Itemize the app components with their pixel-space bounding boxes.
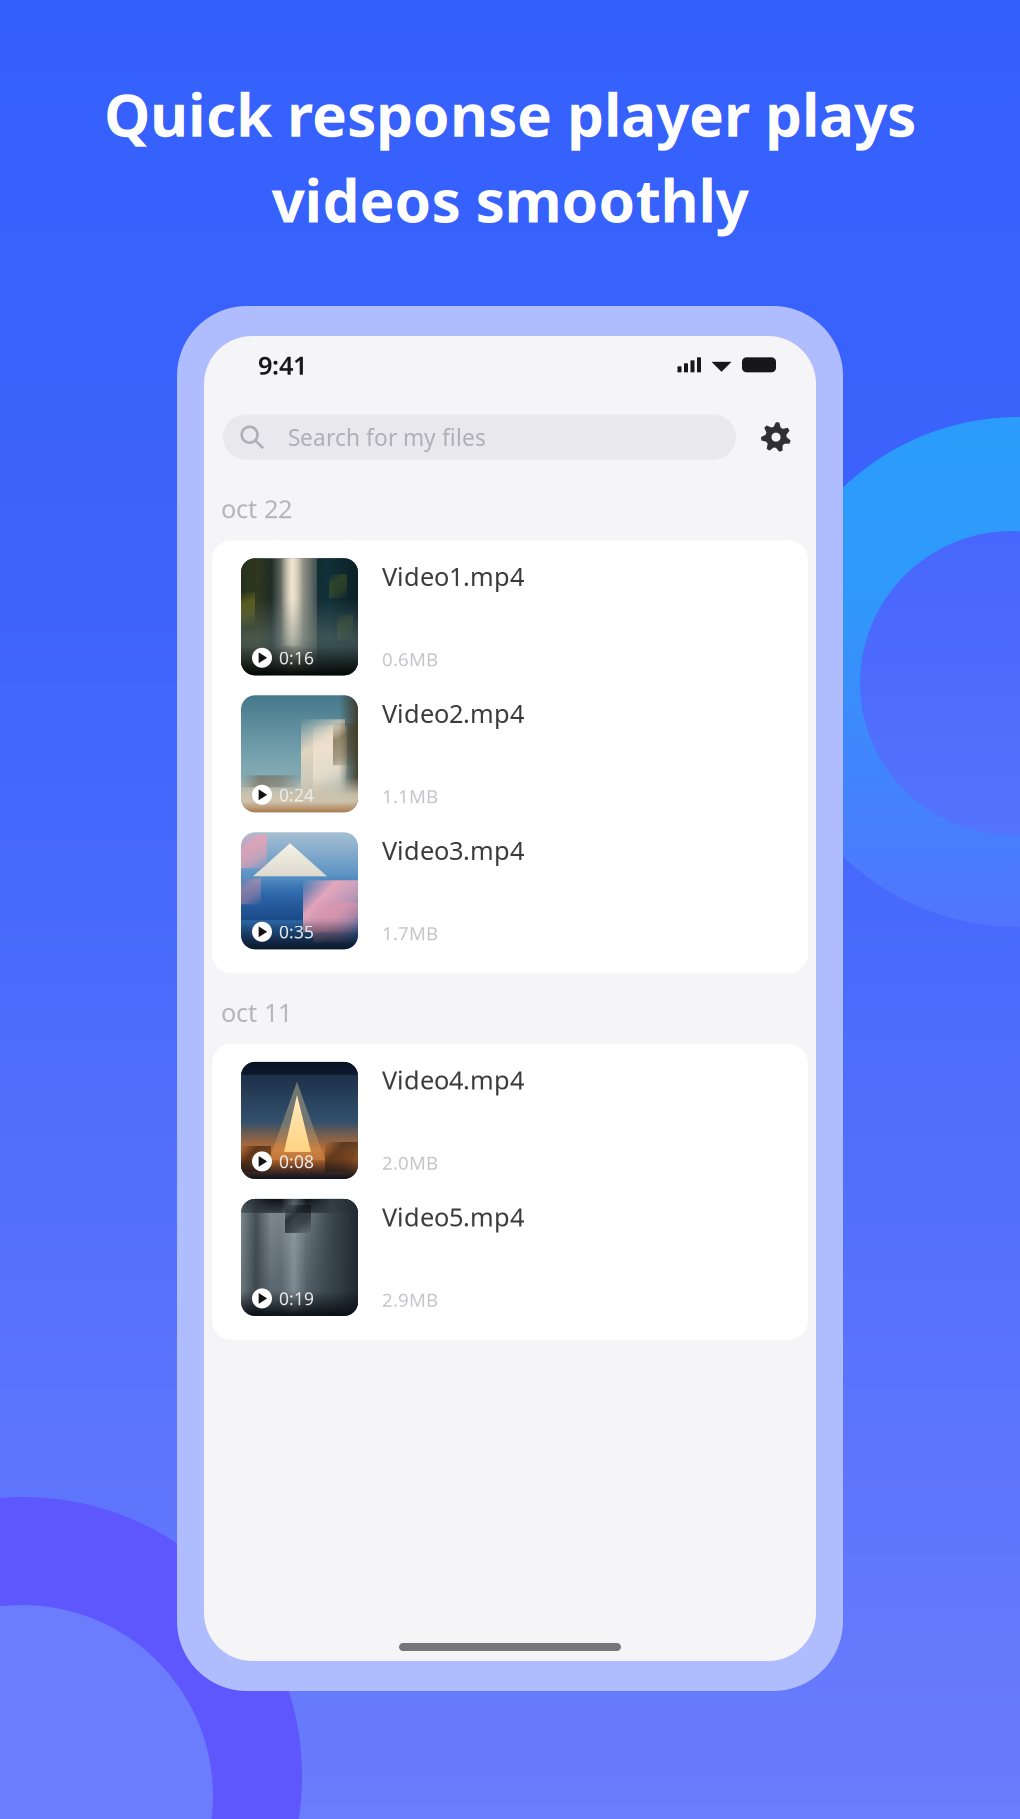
staticText: 0.6MB: [382, 646, 438, 671]
staticText: Search for my files: [288, 422, 486, 452]
staticText: 0:16: [279, 646, 314, 669]
button[interactable]: 0:35: [212, 825, 808, 962]
staticText: videos smoothly: [271, 161, 748, 239]
button[interactable]: Search for my files: [223, 415, 736, 460]
staticText: oct 22: [221, 492, 292, 525]
staticText: 2.0MB: [382, 1150, 438, 1175]
button[interactable]: 0:19: [212, 1192, 808, 1329]
staticText: Video1.mp4: [382, 559, 524, 593]
staticText: 9:41: [258, 348, 307, 382]
staticText: oct 11: [221, 995, 292, 1029]
staticText: Video3.mp4: [382, 833, 524, 867]
staticText: Quick response player plays: [104, 75, 916, 153]
button[interactable]: 0:24: [212, 688, 808, 825]
staticText: Video5.mp4: [382, 1200, 524, 1233]
staticText: 0:19: [279, 1287, 314, 1310]
staticText: Video4.mp4: [382, 1063, 524, 1096]
button[interactable]: Settings: [754, 415, 798, 460]
button[interactable]: 0:08: [212, 1055, 808, 1192]
staticText: 1.7MB: [382, 920, 438, 945]
staticText: 0:35: [279, 920, 314, 943]
staticText: 2.9MB: [382, 1287, 438, 1312]
button[interactable]: 0:16: [212, 551, 808, 688]
staticText: 0:24: [279, 783, 314, 806]
staticText: Video2.mp4: [382, 696, 524, 730]
staticText: 0:08: [279, 1150, 314, 1173]
staticText: 1.1MB: [382, 783, 438, 808]
